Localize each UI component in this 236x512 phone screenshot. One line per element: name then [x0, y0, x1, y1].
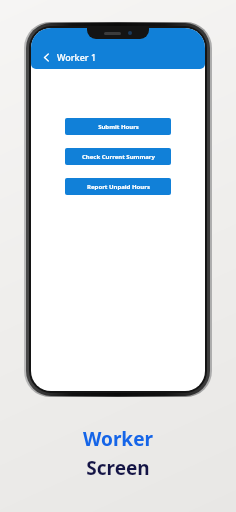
staticText: Report Unpaid Hours [87, 183, 150, 191]
button[interactable]: Report Unpaid Hours [65, 178, 171, 195]
staticText: Submit Hours [98, 123, 139, 131]
button[interactable]: Submit Hours [65, 118, 171, 135]
button[interactable]: Back [39, 50, 53, 64]
staticText: Worker 1 [57, 51, 97, 63]
button[interactable]: Check Current Summary [65, 148, 171, 165]
staticText: Screen [86, 455, 150, 481]
staticText: Check Current Summary [82, 153, 155, 161]
staticText: Worker [83, 426, 153, 452]
